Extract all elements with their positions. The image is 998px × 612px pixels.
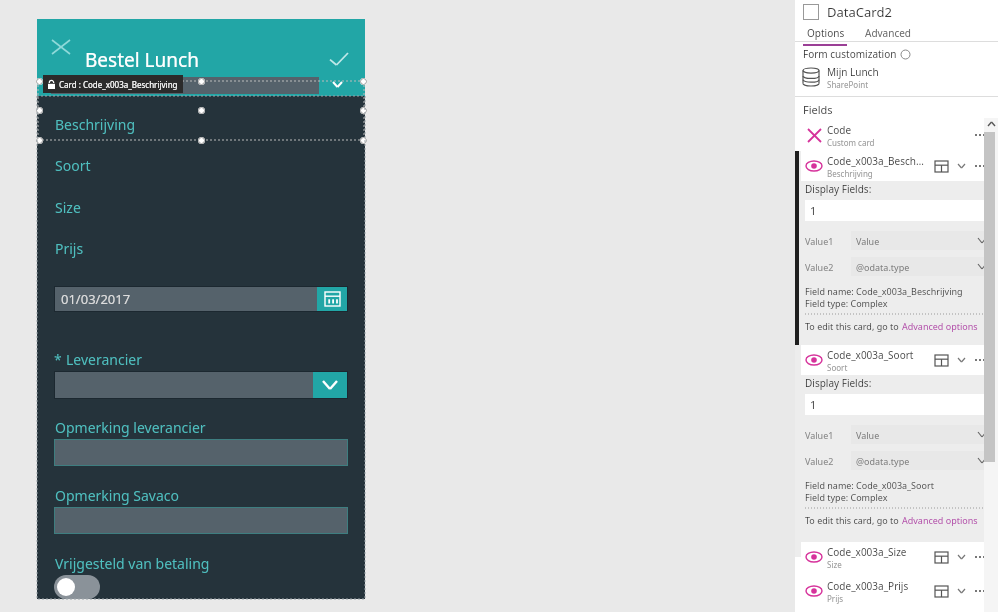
button[interactable]: @odata.type [851,451,992,470]
staticText: Size [827,559,842,570]
staticText: 01/03/2017 [61,290,131,308]
staticText: Options [807,26,845,40]
staticText: To edit this card, go to [805,514,902,526]
button[interactable]: More card types [954,164,968,168]
staticText: Field type: Complex [805,297,888,309]
staticText: Code_x003a_Beschrij... [827,154,928,168]
staticText: Prijs [55,239,84,258]
button[interactable]: More options [968,590,992,592]
staticText: Value [856,429,880,441]
staticText: Display Fields: [805,376,872,390]
button[interactable] [55,372,347,398]
button[interactable]: @odata.type [851,257,992,276]
staticText: Display Fields: [805,182,872,196]
staticText: Vrijgesteld van betaling [55,554,210,573]
staticText: Advanced [865,26,911,40]
button[interactable]: Code_x003a_Prijs [801,576,992,606]
staticText: Soort [827,362,848,373]
staticText: Bestel Lunch [85,47,199,73]
staticText: Leverancier [66,350,142,369]
staticText: Fields [803,102,833,117]
button[interactable]: 1 [805,200,992,221]
button[interactable]: Scroll up [984,118,998,130]
button[interactable]: Advanced options [902,320,978,332]
button[interactable]: Card type [928,355,954,366]
staticText: Field type: Complex [805,491,888,503]
staticText: Size [55,198,81,217]
button[interactable]: More options [968,134,992,136]
staticText: To edit this card, go to [805,320,902,332]
staticText: Beschrijving [55,115,136,134]
button[interactable] [54,507,348,534]
staticText: Code_x003a_Size [827,545,907,559]
staticText: Advanced options [902,320,978,332]
staticText: Value [856,235,880,247]
button[interactable]: Save [325,47,353,71]
staticText: Beschrijving [827,168,873,179]
staticText: Opmerking leverancier [55,418,206,437]
button[interactable]: More options [968,165,992,167]
staticText: Advanced options [902,514,978,526]
staticText: Code_x003a_Soort [827,348,914,362]
button[interactable]: Value [851,231,992,250]
staticText: Card : Code_x003a_Beschrijving [59,79,178,90]
button[interactable]: 01/03/2017 [55,287,347,311]
staticText: * [54,350,66,369]
button[interactable]: More card types [954,555,968,559]
staticText: SharePoint [827,79,869,90]
staticText: 1 [810,397,817,412]
button[interactable]: Code [801,120,992,150]
button[interactable]: Cancel [45,33,77,61]
staticText: Value1 [805,429,851,441]
staticText: Code [827,123,852,137]
button[interactable] [54,439,348,466]
button[interactable]: More card types [954,589,968,593]
button[interactable] [51,77,331,94]
staticText: 1 [810,203,817,218]
staticText: Opmerking Savaco [55,486,179,505]
staticText: DataCard2 [827,3,892,21]
button[interactable]: Card type [928,161,954,172]
staticText: Datum [55,281,100,300]
staticText: Field name: Code_x003a_Soort [805,479,934,491]
button[interactable]: 1 [805,394,992,415]
staticText: Form customization [803,47,897,61]
button[interactable]: More options [968,359,992,361]
staticText: Value2 [805,261,851,273]
button[interactable]: Card type [928,586,954,597]
staticText: Prijs [827,593,844,604]
staticText: Custom card [827,137,875,148]
staticText: @odata.type [856,455,910,467]
button[interactable]: Code_x003a_Soort [801,345,992,375]
button[interactable]: More card types [954,358,968,362]
button[interactable]: Expand [319,75,355,94]
button[interactable]: Mijn Lunch [803,63,998,91]
staticText: Mijn Lunch [827,65,879,79]
staticText: Value1 [805,235,851,247]
staticText: @odata.type [856,261,910,273]
staticText: Value2 [805,455,851,467]
button[interactable]: Code_x003a_Beschrij... [801,151,992,181]
button[interactable]: Advanced options [902,514,978,526]
button[interactable]: Code_x003a_Size [801,542,992,572]
button[interactable]: Value [851,425,992,444]
button[interactable]: Advanced [861,24,915,42]
button[interactable]: Options [803,24,849,42]
button[interactable]: Card type [928,552,954,563]
button[interactable]: More options [968,556,992,558]
staticText: Code_x003a_Prijs [827,579,909,593]
staticText: Soort [55,156,91,175]
staticText: Field name: Code_x003a_Beschrijving [805,285,963,297]
button[interactable] [54,575,100,599]
